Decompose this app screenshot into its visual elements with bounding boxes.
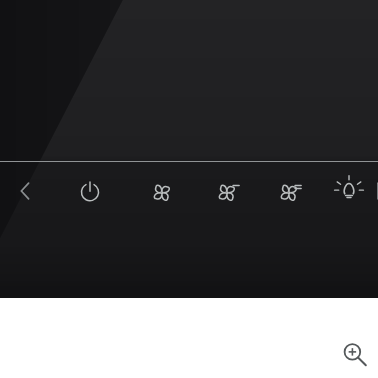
button[interactable]: Power [50,162,130,220]
button[interactable]: Fan speed low [130,162,196,220]
button[interactable]: Zoom in [332,332,378,378]
button[interactable]: Light [320,162,378,220]
button[interactable]: Previous [0,162,50,220]
button[interactable]: Fan speed medium [196,162,260,220]
button[interactable]: Fan speed high [260,162,320,220]
